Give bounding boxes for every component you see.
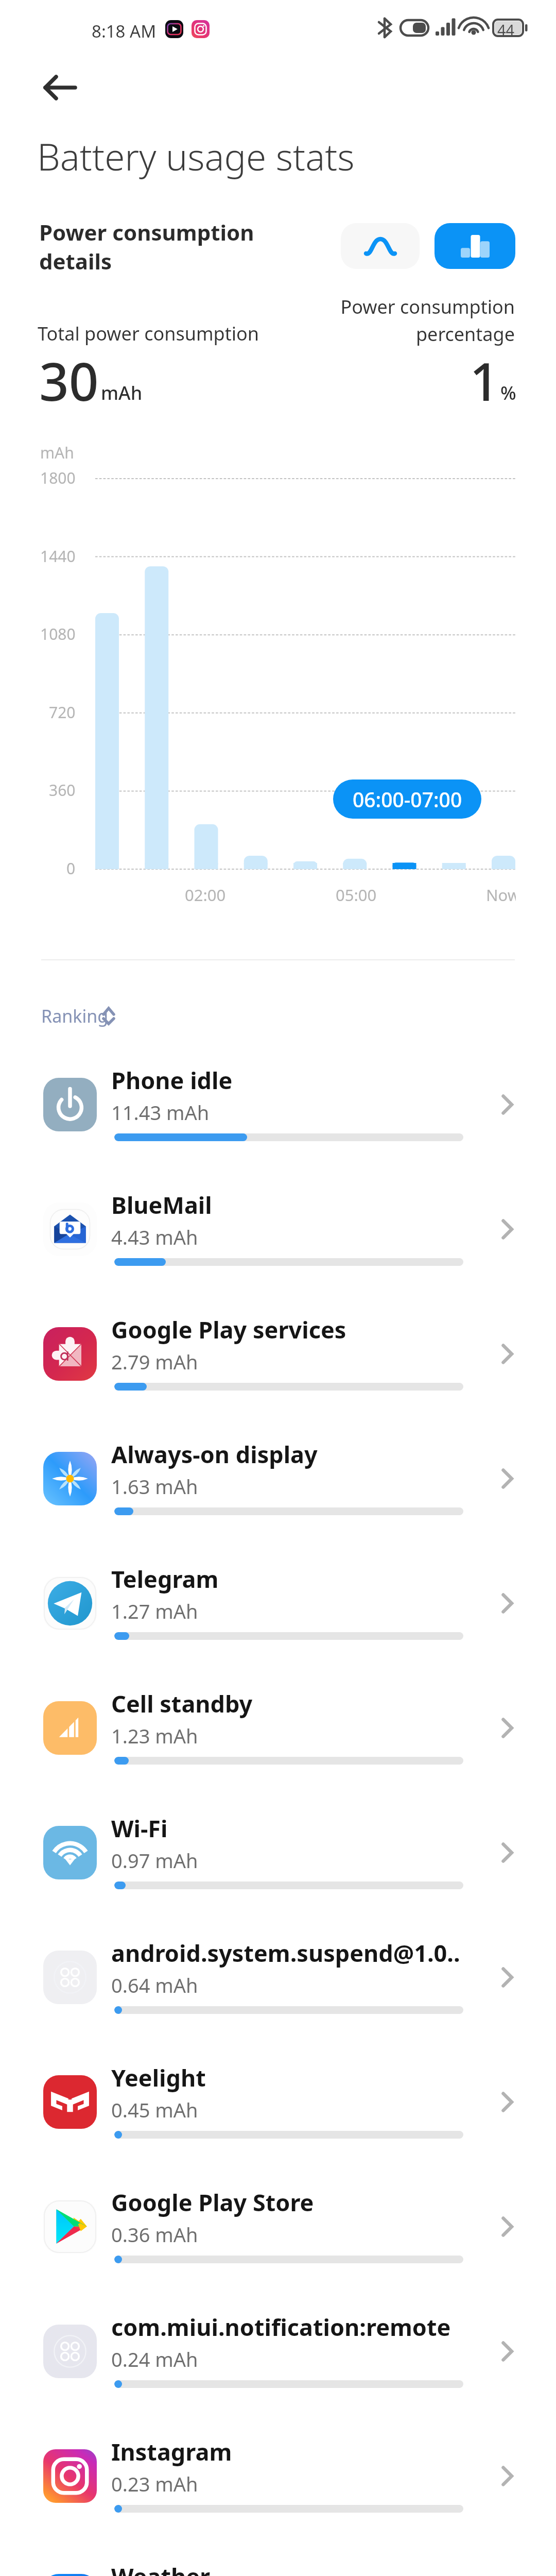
staticText: 360 [49, 779, 76, 801]
staticText: 06:00-07:00 [353, 786, 462, 813]
staticText: Instagram [111, 2436, 232, 2467]
staticText: 2.79 mAh [111, 1348, 198, 1375]
staticText: Google Play services [111, 1314, 346, 1345]
button[interactable]: Back [29, 61, 91, 114]
staticText: mAh [40, 442, 74, 463]
button[interactable]: Line chart view [341, 223, 420, 269]
staticText: 30 [39, 345, 99, 416]
button[interactable]: Weather [0, 2548, 556, 2576]
staticText: 1 [470, 345, 499, 416]
button[interactable]: BlueMail [0, 1177, 556, 1301]
button[interactable]: com.miui.notification:remote [0, 2299, 556, 2424]
button[interactable]: Yeelight [0, 2049, 556, 2174]
button[interactable]: android.system.suspend@1.0.. [0, 1925, 556, 2049]
staticText: 1800 [40, 467, 76, 488]
button[interactable]: Cell standby [0, 1675, 556, 1800]
staticText: 1.23 mAh [111, 1722, 198, 1749]
button[interactable]: Instagram [0, 2424, 556, 2548]
staticText: 0.64 mAh [111, 1972, 198, 1998]
staticText: 4.43 mAh [111, 1224, 198, 1250]
staticText: % [500, 380, 516, 405]
staticText: 0 [66, 858, 76, 879]
button[interactable]: Google Play Store [0, 2174, 556, 2299]
staticText: 1.63 mAh [111, 1473, 198, 1500]
staticText: 02:00 [185, 884, 226, 906]
staticText: Now [486, 884, 516, 906]
staticText: Always-on display [111, 1438, 318, 1470]
staticText: 0.23 mAh [111, 2470, 198, 2497]
staticText: Power consumption details [39, 217, 254, 276]
staticText: Ranking [41, 1004, 109, 1028]
staticText: 05:00 [336, 884, 377, 906]
staticText: 0.45 mAh [111, 2096, 198, 2123]
staticText: Telegram [111, 1563, 219, 1595]
staticText: 11.43 mAh [111, 1099, 210, 1126]
staticText: 0.97 mAh [111, 1847, 198, 1874]
button[interactable]: Ranking [38, 999, 118, 1030]
button[interactable]: Google Play services [0, 1301, 556, 1426]
button[interactable]: Bar chart view [435, 223, 515, 269]
staticText: 44 [497, 20, 515, 40]
button[interactable]: Telegram [0, 1551, 556, 1675]
staticText: Power consumption percentage [268, 294, 515, 346]
staticText: Google Play Store [111, 2187, 314, 2218]
staticText: 8:18 AM [92, 20, 157, 43]
staticText: Battery usage stats [37, 131, 355, 181]
staticText: Phone idle [111, 1064, 233, 1096]
staticText: BlueMail [111, 1189, 212, 1221]
staticText: 1440 [40, 546, 76, 567]
staticText: com.miui.notification:remote [111, 2311, 451, 2343]
staticText: 1080 [40, 623, 76, 645]
button[interactable]: Wi-Fi [0, 1800, 556, 1925]
staticText: mAh [101, 380, 143, 405]
staticText: 1.27 mAh [111, 1598, 198, 1624]
staticText: Total power consumption [38, 321, 259, 346]
staticText: Yeelight [111, 2062, 206, 2093]
staticText: Wi-Fi [111, 1812, 168, 1844]
staticText: 0.24 mAh [111, 2346, 198, 2372]
staticText: android.system.suspend@1.0.. [111, 1937, 460, 1969]
staticText: Cell standby [111, 1688, 253, 1719]
button[interactable]: Phone idle [0, 1052, 556, 1177]
button[interactable]: Always-on display [0, 1426, 556, 1551]
staticText: 0.36 mAh [111, 2221, 198, 2248]
staticText: Weather [111, 2561, 211, 2576]
staticText: 720 [49, 702, 76, 723]
